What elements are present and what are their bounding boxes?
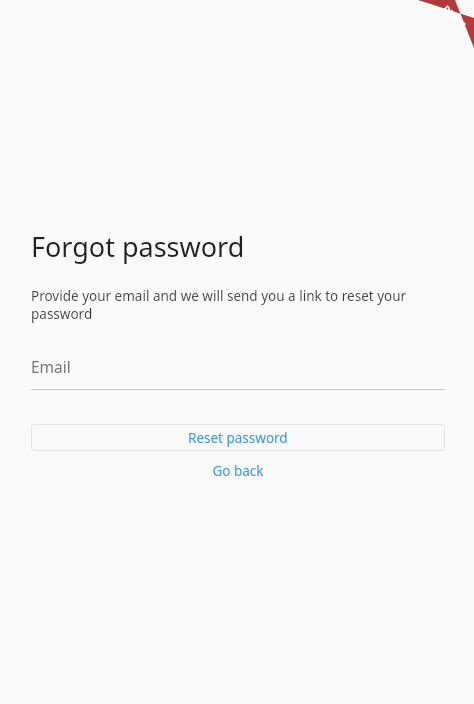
staticText: Forgot password bbox=[31, 228, 245, 265]
button[interactable]: Email bbox=[31, 356, 445, 390]
staticText: Go back bbox=[212, 462, 264, 480]
button[interactable]: Reset password bbox=[31, 424, 445, 451]
other: Debug build banner bbox=[384, 0, 474, 90]
staticText: Provide your email and we will send you … bbox=[31, 287, 445, 323]
button[interactable]: Go back bbox=[31, 460, 445, 482]
staticText: Email bbox=[31, 356, 71, 377]
staticText: Reset password bbox=[188, 429, 288, 447]
